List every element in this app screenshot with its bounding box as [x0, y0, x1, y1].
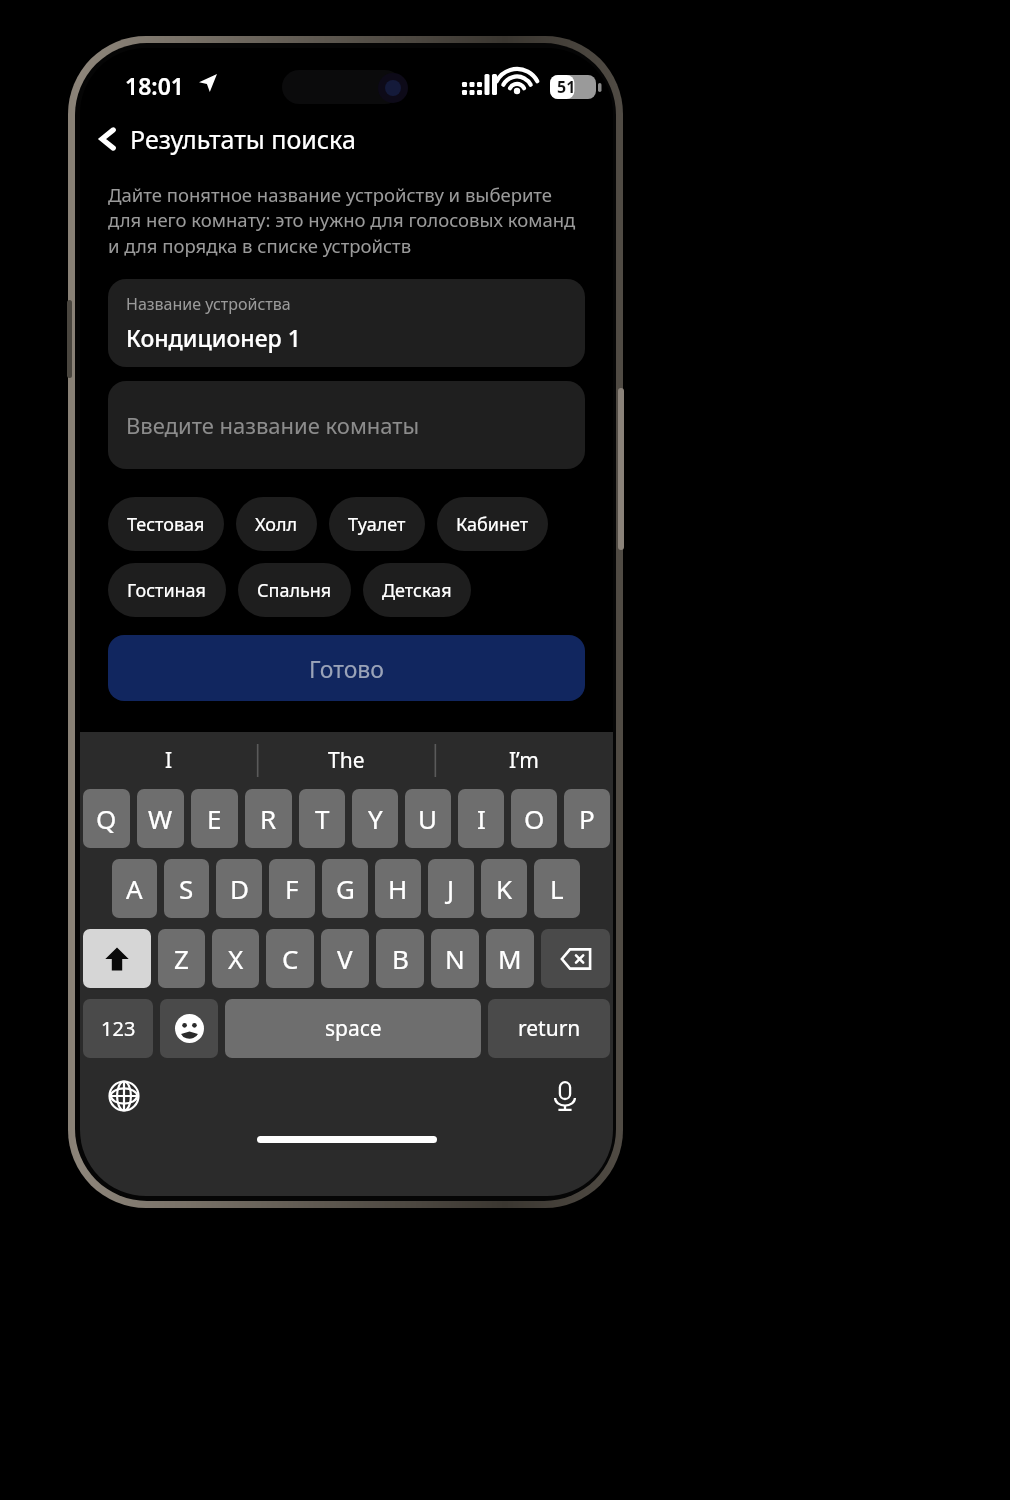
staticText: A	[126, 871, 143, 906]
button[interactable]: U	[405, 789, 451, 848]
staticText: Туалет	[348, 512, 406, 537]
button[interactable]: O	[511, 789, 557, 848]
button[interactable]: 123	[83, 999, 153, 1058]
button[interactable]: The	[257, 732, 435, 789]
staticText: Детская	[382, 578, 452, 603]
staticText: D	[230, 871, 249, 906]
button[interactable]: Туалет	[329, 497, 425, 551]
button[interactable]: Change keyboard language	[102, 1074, 146, 1118]
button[interactable]: Детская	[363, 563, 471, 617]
button[interactable]: Q	[83, 789, 130, 848]
button[interactable]: W	[137, 789, 184, 848]
staticText: Y	[368, 801, 383, 836]
button[interactable]: K	[481, 859, 527, 918]
staticText: Дайте понятное название устройству и выб…	[108, 182, 576, 259]
button[interactable]: C	[266, 929, 314, 988]
button[interactable]: F	[269, 859, 315, 918]
button[interactable]: Введите название комнаты	[108, 381, 585, 469]
staticText: I	[477, 801, 486, 836]
staticText: Q	[96, 801, 117, 836]
staticText: T	[315, 801, 330, 836]
staticText: B	[392, 941, 409, 976]
button[interactable]: Backspace	[541, 929, 610, 988]
staticText: E	[207, 801, 222, 836]
staticText: Гостиная	[127, 578, 207, 603]
staticText: F	[285, 871, 299, 906]
staticText: I’m	[509, 746, 539, 775]
button[interactable]: Название устройства	[108, 279, 585, 367]
button[interactable]: J	[428, 859, 474, 918]
staticText: R	[260, 801, 277, 836]
button[interactable]: Гостиная	[108, 563, 226, 617]
staticText: G	[336, 871, 355, 906]
button[interactable]: E	[191, 789, 238, 848]
staticText: C	[282, 941, 299, 976]
staticText: Кабинет	[456, 512, 529, 537]
button[interactable]: space	[225, 999, 481, 1058]
staticText: K	[496, 871, 513, 906]
button[interactable]: A	[112, 859, 157, 918]
staticText: Готово	[309, 653, 384, 684]
staticText: U	[418, 801, 438, 836]
button[interactable]: Холл	[236, 497, 317, 551]
staticText: O	[524, 801, 545, 836]
staticText: M	[498, 941, 522, 976]
staticText: Кондиционер 1	[126, 322, 301, 353]
staticText: S	[179, 871, 194, 906]
button[interactable]: Back	[80, 110, 613, 168]
button[interactable]: Z	[158, 929, 205, 988]
staticText: V	[337, 941, 353, 976]
staticText: P	[579, 801, 595, 836]
staticText: J	[447, 871, 455, 906]
button[interactable]: I’m	[435, 732, 613, 789]
button[interactable]: B	[376, 929, 424, 988]
button[interactable]: L	[534, 859, 580, 918]
button[interactable]: Спальня	[238, 563, 351, 617]
button[interactable]: X	[212, 929, 259, 988]
button[interactable]: Shift	[83, 929, 151, 988]
staticText: Холл	[255, 512, 298, 537]
button[interactable]: Тестовая	[108, 497, 224, 551]
staticText: Спальня	[257, 578, 332, 603]
staticText: space	[325, 1014, 382, 1043]
staticText: return	[518, 1014, 581, 1043]
staticText: L	[550, 871, 564, 906]
button[interactable]: N	[431, 929, 479, 988]
button[interactable]: M	[486, 929, 534, 988]
staticText: The	[328, 746, 365, 775]
other: Back	[96, 127, 120, 151]
staticText: 51	[557, 76, 576, 98]
button[interactable]: Готово	[108, 635, 585, 701]
staticText: H	[388, 871, 408, 906]
button[interactable]: Y	[352, 789, 398, 848]
button[interactable]: R	[245, 789, 292, 848]
button[interactable]: return	[488, 999, 610, 1058]
button[interactable]: Emoji	[160, 999, 218, 1058]
button[interactable]: G	[322, 859, 368, 918]
staticText: Введите название комнаты	[126, 410, 420, 440]
button[interactable]: I	[80, 732, 257, 789]
button[interactable]: V	[321, 929, 369, 988]
button[interactable]: P	[564, 789, 610, 848]
staticText: 18:01	[125, 70, 184, 101]
staticText: Результаты поиска	[130, 122, 356, 156]
button[interactable]: D	[216, 859, 262, 918]
button[interactable]: Кабинет	[437, 497, 548, 551]
staticText: X	[228, 941, 244, 976]
button[interactable]: T	[299, 789, 345, 848]
staticText: I	[165, 746, 173, 775]
staticText: Название устройства	[126, 293, 291, 315]
staticText: 123	[101, 1015, 136, 1042]
button[interactable]: H	[375, 859, 421, 918]
staticText: Z	[174, 941, 189, 976]
staticText: N	[445, 941, 465, 976]
button[interactable]: S	[164, 859, 209, 918]
staticText: Тестовая	[127, 512, 205, 537]
button[interactable]: Dictate	[543, 1074, 587, 1118]
staticText: W	[148, 801, 173, 836]
button[interactable]: I	[458, 789, 504, 848]
